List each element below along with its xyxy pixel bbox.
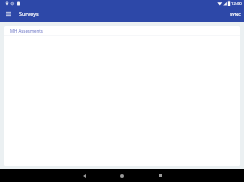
button[interactable]: Open navigation menu [0, 7, 16, 21]
staticText: SYNC [230, 11, 241, 17]
staticText: MH Assesments [10, 28, 43, 34]
button[interactable]: Recent apps [150, 169, 170, 182]
button[interactable]: MH Assesments [4, 26, 240, 35]
staticText: 12:00 [231, 1, 242, 7]
button[interactable]: Back [74, 169, 94, 182]
staticText: Surveys [19, 10, 39, 17]
button[interactable]: SYNC [226, 8, 244, 20]
button[interactable]: Home [112, 169, 132, 182]
